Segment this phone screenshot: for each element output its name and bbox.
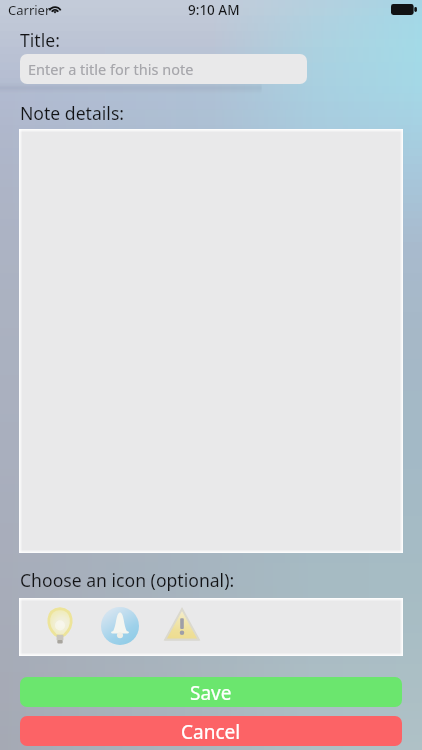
- staticText: Carrier: [8, 1, 51, 19]
- button[interactable]: Bell reminder icon: [101, 607, 139, 645]
- button[interactable]: Cancel: [20, 716, 402, 746]
- staticText: 9:10 AM: [188, 1, 240, 19]
- staticText: Note details:: [20, 101, 125, 125]
- staticText: Title:: [20, 28, 60, 52]
- button[interactable]: Idea light bulb icon: [42, 607, 78, 647]
- button[interactable]: Save: [20, 677, 402, 707]
- staticText: Save: [190, 680, 232, 706]
- button[interactable]: Enter a title for this note: [20, 54, 307, 84]
- staticText: Enter a title for this note: [28, 59, 194, 79]
- staticText: Cancel: [181, 719, 241, 745]
- button[interactable]: Warning icon: [164, 607, 200, 643]
- staticText: Choose an icon (optional):: [20, 568, 235, 592]
